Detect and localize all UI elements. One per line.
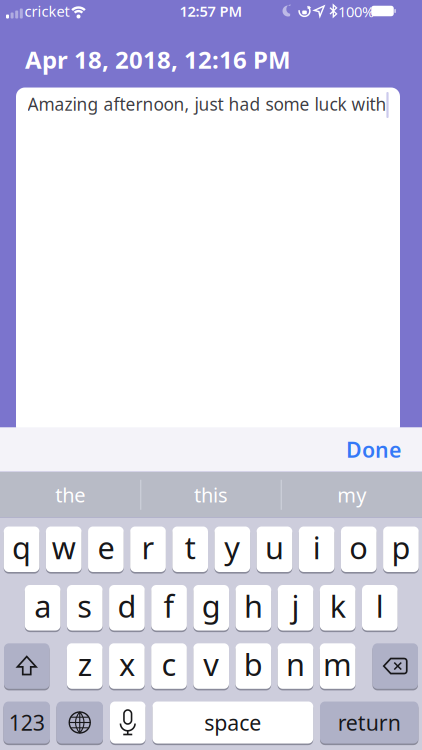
button[interactable]: i <box>299 525 334 573</box>
button[interactable]: the <box>1 472 139 518</box>
staticText: t <box>185 527 196 568</box>
staticText: q <box>12 527 31 568</box>
button[interactable] <box>372 642 418 690</box>
staticText: y <box>224 527 240 568</box>
button[interactable]: z <box>67 642 102 690</box>
button[interactable]: g <box>193 584 229 631</box>
button[interactable]: n <box>278 642 313 690</box>
button[interactable]: r <box>130 525 166 573</box>
staticText: d <box>117 585 136 626</box>
button[interactable]: this <box>142 472 280 518</box>
button[interactable]: t <box>172 525 208 573</box>
button[interactable]: k <box>320 584 355 631</box>
staticText: this <box>194 481 228 508</box>
button[interactable]: f <box>151 584 187 631</box>
staticText: j <box>291 585 299 626</box>
staticText: l <box>376 585 384 626</box>
staticText: 100% <box>338 2 374 21</box>
button[interactable]: o <box>341 525 376 573</box>
staticText: v <box>203 644 219 684</box>
staticText: s <box>77 585 92 626</box>
button[interactable]: my <box>283 472 421 518</box>
staticText: cricket <box>24 1 69 21</box>
button[interactable]: d <box>109 584 145 631</box>
staticText: Done <box>346 435 401 464</box>
staticText: b <box>244 644 263 684</box>
staticText: u <box>265 527 284 568</box>
button[interactable]: return <box>320 700 418 744</box>
staticText: h <box>244 585 263 626</box>
staticText: f <box>164 585 175 626</box>
button[interactable]: space <box>152 700 313 744</box>
button[interactable]: x <box>109 642 145 690</box>
staticText: c <box>161 644 176 684</box>
button[interactable]: 123 <box>3 700 50 744</box>
button[interactable]: b <box>235 642 271 690</box>
staticText: r <box>141 527 154 568</box>
staticText: x <box>119 644 135 684</box>
button[interactable]: m <box>320 642 355 690</box>
staticText: the <box>55 481 85 508</box>
button[interactable]: q <box>4 525 39 573</box>
button[interactable]: w <box>46 525 81 573</box>
button[interactable]: Done <box>311 427 401 472</box>
button[interactable]: a <box>25 584 60 631</box>
staticText: g <box>202 585 221 626</box>
staticText: k <box>330 585 346 626</box>
button[interactable]: e <box>88 525 124 573</box>
button[interactable]: c <box>151 642 187 690</box>
staticText: return <box>338 708 401 737</box>
staticText: 123 <box>9 708 45 737</box>
button[interactable]: y <box>214 525 250 573</box>
button[interactable]: l <box>362 584 398 631</box>
button[interactable] <box>56 700 103 744</box>
button[interactable] <box>110 700 145 744</box>
staticText: p <box>391 527 410 568</box>
staticText: o <box>349 527 368 568</box>
button[interactable]: p <box>383 525 419 573</box>
button[interactable]: v <box>193 642 229 690</box>
staticText: Apr 18, 2018, 12:16 PM <box>25 44 291 75</box>
staticText: m <box>323 644 352 684</box>
button[interactable]: h <box>236 584 271 631</box>
button[interactable]: s <box>67 584 103 631</box>
staticText: z <box>78 644 92 684</box>
staticText: w <box>52 527 76 568</box>
staticText: i <box>313 527 321 568</box>
staticText: a <box>34 585 51 626</box>
staticText: n <box>286 644 305 684</box>
staticText: Amazing afternoon, just had some luck wi… <box>27 92 386 115</box>
staticText: 12:57 PM <box>179 1 242 21</box>
staticText: e <box>97 527 114 568</box>
button[interactable] <box>4 642 49 690</box>
button[interactable]: u <box>257 525 292 573</box>
button[interactable]: j <box>278 584 313 631</box>
staticText: space <box>204 708 261 737</box>
staticText: my <box>337 481 366 508</box>
